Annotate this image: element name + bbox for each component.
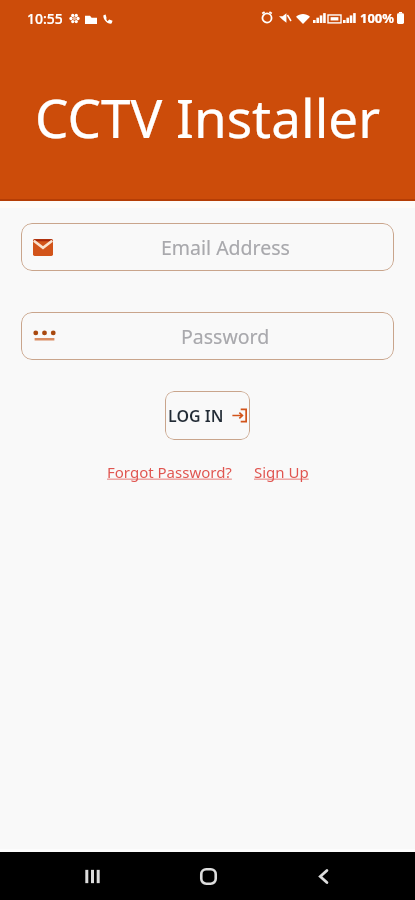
button[interactable]: Password [21,312,394,360]
staticText: LOG IN [168,405,224,427]
staticText: 100% [360,9,395,27]
staticText: 10:55 [27,9,63,28]
button[interactable]: Sign Up [254,462,309,482]
button[interactable]: Back [299,852,347,900]
button[interactable]: LOG IN [165,391,250,440]
button[interactable]: Forgot Password? [107,462,232,482]
button[interactable]: Email Address [21,223,394,271]
staticText: CCTV Installer [35,81,381,153]
button[interactable]: Recents [68,852,116,900]
staticText: Email Address [161,234,290,261]
staticText: Password [181,323,270,350]
button[interactable]: Home [184,852,232,900]
